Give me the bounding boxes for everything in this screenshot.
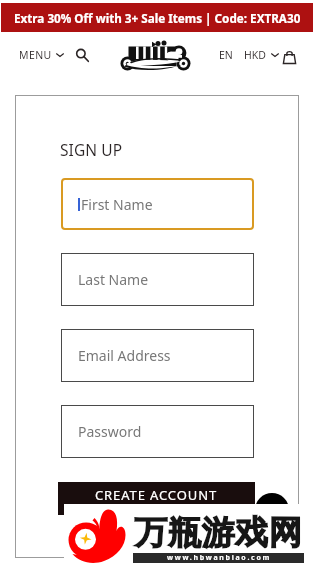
button[interactable]: Email Address [61, 329, 254, 382]
staticText: First Name [81, 195, 153, 214]
button[interactable]: MENU [19, 48, 64, 62]
button[interactable]: CREATE ACCOUNT [58, 482, 255, 515]
staticText: Email Address [78, 346, 171, 365]
staticText: Extra 30% Off with 3+ Sale Items | Code:… [14, 10, 301, 26]
staticText: www.hbwanbiao.com [167, 553, 271, 563]
staticText: Password [78, 422, 142, 441]
button[interactable]: Password [61, 405, 254, 458]
button[interactable]: First Name [61, 178, 254, 230]
button[interactable]: Search [75, 48, 89, 62]
button[interactable]: Shopping bag [283, 50, 296, 65]
button[interactable]: HKD [244, 48, 279, 62]
staticText: Last Name [78, 270, 149, 289]
staticText: CREATE ACCOUNT [95, 486, 218, 504]
staticText: 万瓶游戏网 [134, 512, 302, 554]
staticText: MENU [19, 48, 52, 62]
staticText: SIGN UP [60, 139, 123, 160]
button[interactable]: Chat [255, 493, 289, 527]
button[interactable]: Extra 30% Off with 3+ Sale Items | Code:… [1, 3, 313, 32]
staticText: HKD [244, 48, 266, 62]
button[interactable]: EN [219, 48, 233, 62]
button[interactable]: Last Name [61, 253, 254, 306]
